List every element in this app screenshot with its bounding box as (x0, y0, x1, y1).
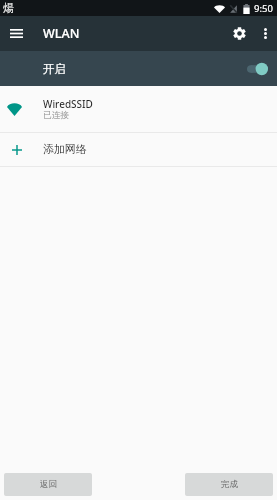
staticText: 9:50 (254, 2, 273, 15)
button[interactable]: 返回 (4, 473, 92, 496)
button[interactable]: WiredSSID (0, 86, 277, 132)
button[interactable]: Advanced Wi-Fi settings (226, 16, 252, 51)
staticText: WiredSSID (43, 97, 93, 111)
button[interactable]: More options (254, 16, 277, 51)
staticText: WLAN (43, 25, 80, 42)
staticText: 返回 (40, 479, 57, 490)
button[interactable]: 添加网络 (0, 133, 277, 166)
staticText: 煬 (3, 1, 14, 15)
staticText: 完成 (221, 479, 238, 490)
staticText: 开启 (43, 62, 66, 76)
staticText: 添加网络 (43, 143, 87, 157)
button[interactable]: 完成 (185, 473, 273, 496)
button[interactable]: Open navigation drawer (0, 16, 32, 51)
staticText: 已连接 (43, 110, 70, 121)
button[interactable]: 开启 (0, 51, 277, 86)
